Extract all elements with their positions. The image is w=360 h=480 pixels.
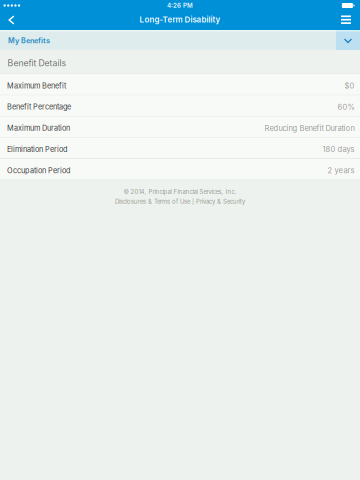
staticText: Reducing Benefit Duration — [264, 124, 354, 133]
staticText: Maximum Duration — [7, 124, 70, 133]
staticText: $0 — [344, 81, 354, 90]
staticText: 60% — [337, 102, 354, 112]
button[interactable]: My Benefits — [0, 30, 360, 50]
staticText: © 2014, Principal Financial Services, In… — [123, 188, 236, 195]
button[interactable]: Maximum Benefit — [0, 74, 360, 95]
staticText: My Benefits — [8, 36, 50, 45]
button[interactable]: Disclosures & Terms of Use | Privacy & S… — [115, 198, 245, 205]
button[interactable]: Back — [0, 10, 23, 30]
staticText: Disclosures & Terms of Use | Privacy & S… — [115, 198, 245, 205]
staticText: Benefit Percentage — [7, 102, 71, 111]
staticText: Long-Term Disability — [139, 15, 220, 25]
staticText: 2 years — [327, 166, 354, 175]
staticText: Benefit Details — [7, 58, 66, 68]
button[interactable]: Benefit Percentage — [0, 95, 360, 117]
button[interactable]: Maximum Duration — [0, 117, 360, 138]
button[interactable]: Elimination Period — [0, 138, 360, 159]
button[interactable]: Occupation Period — [0, 159, 360, 180]
button[interactable]: Menu — [335, 10, 356, 31]
staticText: 4:26 PM — [167, 2, 193, 9]
staticText: Elimination Period — [7, 145, 67, 154]
staticText: 180 days — [322, 145, 354, 154]
staticText: Occupation Period — [7, 166, 70, 175]
staticText: Maximum Benefit — [7, 81, 66, 90]
